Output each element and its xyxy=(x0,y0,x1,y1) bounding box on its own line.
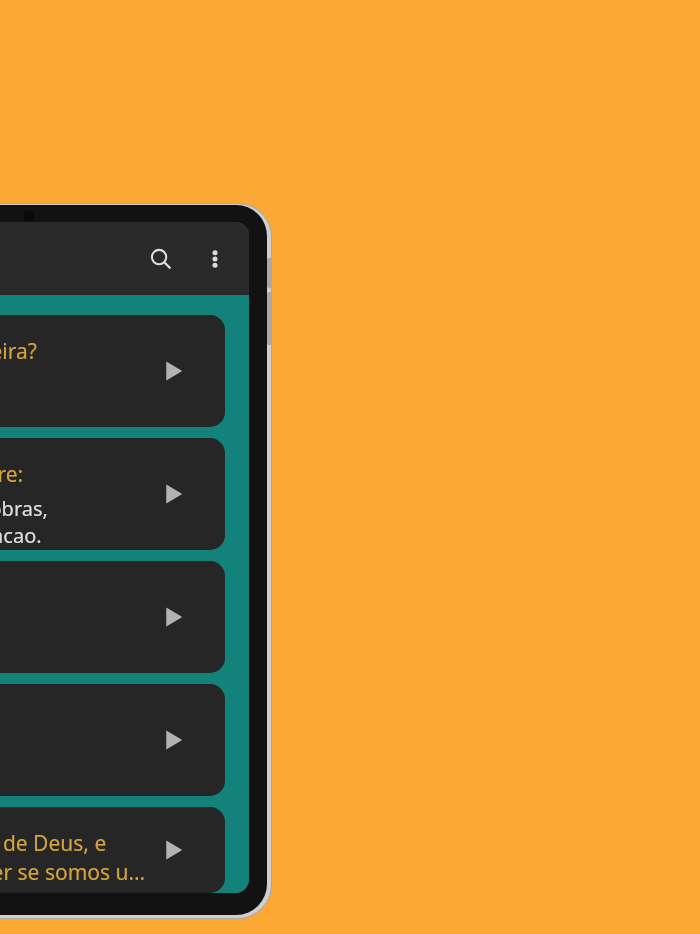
staticText: Quem sao os eleitos de Deus, e como pode… xyxy=(0,829,151,887)
button[interactable]: Search xyxy=(137,235,185,283)
button[interactable]: More options xyxy=(191,235,239,283)
button[interactable]: Play xyxy=(153,597,193,637)
staticText: O que e a fe verdadeira? xyxy=(0,337,37,366)
button[interactable]: Quem sao os eleitos de Deus, e como pode… xyxy=(0,807,225,893)
button[interactable]: Play xyxy=(153,830,193,870)
button[interactable]: Play xyxy=(153,474,193,514)
button[interactable]: Play xyxy=(153,351,193,391)
staticText: Qual a diferenca entre: xyxy=(0,460,24,489)
button[interactable]: O que e a fe verdadeira? xyxy=(0,315,225,427)
button[interactable]: Play xyxy=(153,720,193,760)
staticText: lei e evangelho, fe e obras, justificaca… xyxy=(0,495,151,549)
button[interactable]: Qual a diferenca entre: xyxy=(0,438,225,550)
button[interactable]: Play xyxy=(0,684,225,796)
button[interactable]: Play xyxy=(0,561,225,673)
